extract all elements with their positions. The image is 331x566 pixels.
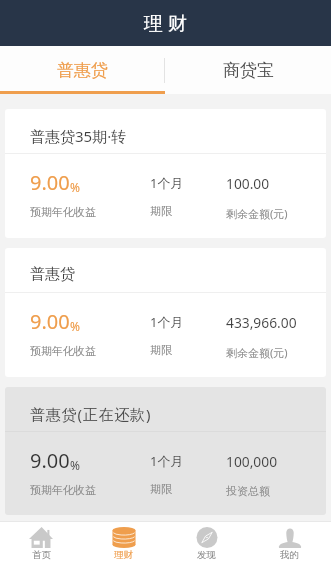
staticText: 预期年化收益 — [30, 483, 96, 497]
staticText: 433,966.00 — [226, 313, 297, 332]
button[interactable]: 普惠贷 — [0, 46, 165, 94]
staticText: 普惠贷 — [57, 60, 108, 81]
staticText: 1个月 — [150, 313, 184, 331]
staticText: 1个月 — [150, 452, 184, 470]
staticText: 普惠贷(正在还款) — [30, 404, 152, 424]
button[interactable]: Discover — [165, 522, 248, 566]
staticText: 期限 — [150, 204, 172, 218]
staticText: 100,000 — [226, 452, 278, 471]
button[interactable]: 普惠贷(正在还款) — [5, 387, 326, 515]
staticText: 商贷宝 — [223, 60, 274, 81]
staticText: 预期年化收益 — [30, 205, 96, 219]
button[interactable]: Profile — [248, 522, 331, 566]
staticText: 1个月 — [150, 174, 184, 192]
button[interactable]: Home — [0, 522, 82, 566]
staticText: 发现 — [197, 549, 216, 561]
staticText: 剩余金额(元) — [226, 345, 288, 360]
staticText: 预期年化收益 — [30, 344, 96, 358]
staticText: 100.00 — [226, 174, 270, 193]
button[interactable]: 普惠贷 — [5, 248, 326, 377]
staticText: 投资总额 — [226, 484, 270, 498]
staticText: 理 财 — [144, 10, 187, 36]
staticText: % — [70, 457, 80, 473]
button[interactable]: 普惠贷35期·转 — [5, 109, 326, 238]
staticText: % — [70, 179, 80, 195]
button[interactable]: Finance — [82, 522, 165, 566]
staticText: 理财 — [114, 549, 133, 561]
staticText: % — [70, 318, 80, 334]
staticText: 期限 — [150, 482, 172, 496]
staticText: 期限 — [150, 343, 172, 357]
staticText: 剩余金额(元) — [226, 206, 288, 221]
staticText: 首页 — [32, 549, 51, 561]
staticText: 我的 — [280, 549, 299, 561]
staticText: 普惠贷35期·转 — [30, 126, 127, 146]
staticText: 9.00 — [30, 308, 70, 335]
staticText: 9.00 — [30, 169, 70, 196]
staticText: 普惠贷 — [30, 265, 75, 284]
button[interactable]: 商贷宝 — [165, 46, 331, 94]
staticText: 9.00 — [30, 447, 70, 474]
